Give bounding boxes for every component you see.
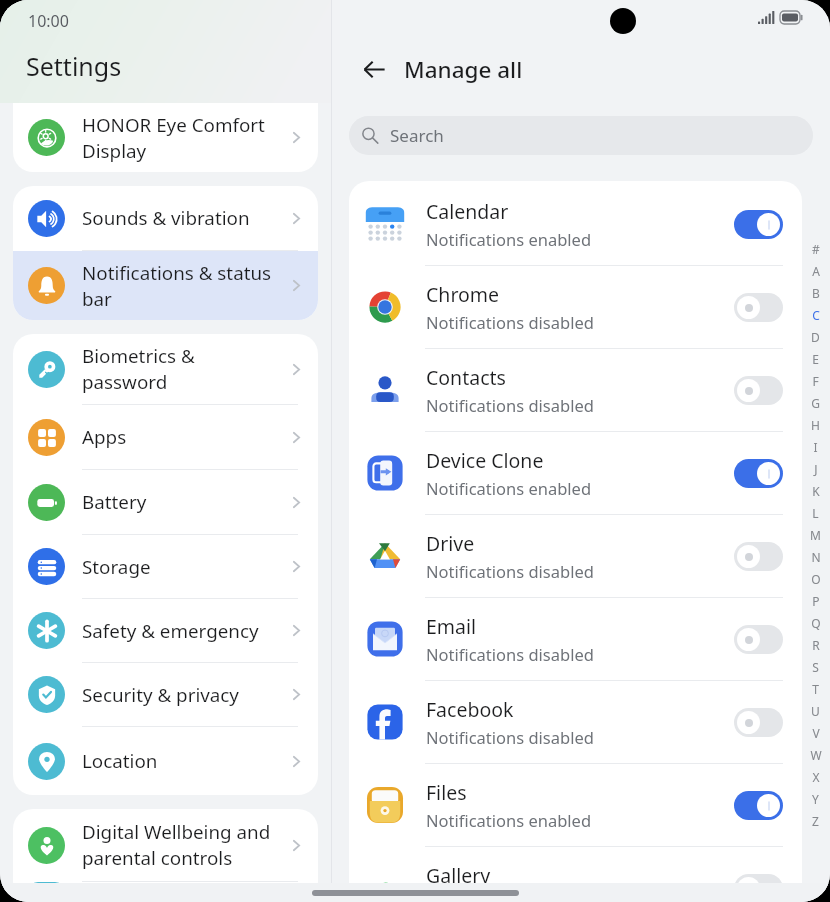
button[interactable]: G [807, 392, 824, 414]
staticText: Email [426, 613, 477, 640]
staticText: E [812, 351, 819, 367]
button[interactable]: Toggle notifications [734, 459, 783, 488]
staticText: Drive [426, 530, 475, 557]
staticText: Chrome [426, 281, 500, 308]
button[interactable]: Files [349, 764, 802, 846]
button[interactable]: L [807, 502, 824, 524]
button[interactable]: T [807, 678, 824, 700]
staticText: A [812, 263, 820, 279]
button[interactable]: B [807, 282, 824, 304]
staticText: Calendar [426, 198, 509, 225]
button[interactable]: J [807, 458, 824, 480]
button[interactable]: Q [807, 612, 824, 634]
button[interactable]: Drive [349, 515, 802, 597]
button[interactable]: S [807, 656, 824, 678]
button[interactable]: H [807, 414, 824, 436]
button[interactable]: X [807, 766, 824, 788]
staticText: R [812, 637, 820, 653]
staticText: Search [390, 124, 444, 147]
button[interactable]: Security & privacy [13, 663, 318, 726]
button[interactable]: Toggle notifications [734, 542, 783, 571]
staticText: # [812, 241, 820, 257]
staticText: Contacts [426, 364, 506, 391]
button[interactable]: Toggle notifications [734, 791, 783, 820]
staticText: Biometrics & password [82, 343, 288, 395]
staticText: Manage all [404, 54, 523, 85]
button[interactable]: Toggle notifications [734, 625, 783, 654]
staticText: Gallery [426, 862, 491, 889]
button[interactable]: Toggle notifications [734, 293, 783, 322]
button[interactable]: I [807, 436, 824, 458]
staticText: K [812, 483, 820, 499]
button[interactable]: Accessibility [13, 882, 318, 902]
staticText: HONOR Eye Comfort Display [82, 112, 288, 164]
button[interactable]: Battery [13, 470, 318, 534]
staticText: V [812, 725, 820, 741]
staticText: M [810, 527, 821, 543]
button[interactable]: Toggle notifications [734, 210, 783, 239]
staticText: Security & privacy [82, 682, 288, 708]
button[interactable]: Toggle notifications [734, 376, 783, 405]
button[interactable]: Biometrics & password [13, 334, 318, 404]
staticText: S [812, 659, 819, 675]
button[interactable]: V [807, 722, 824, 744]
button[interactable]: # [807, 238, 824, 260]
button[interactable]: Y [807, 788, 824, 810]
staticText: Facebook [426, 696, 514, 723]
button[interactable]: Device Clone [349, 432, 802, 514]
button[interactable]: P [807, 590, 824, 612]
button[interactable]: A [807, 260, 824, 282]
staticText: U [811, 703, 820, 719]
button[interactable]: M [807, 524, 824, 546]
staticText: P [812, 593, 820, 609]
button[interactable]: R [807, 634, 824, 656]
button[interactable]: HONOR Eye Comfort Display [13, 103, 318, 172]
button[interactable]: Storage [13, 535, 318, 598]
staticText: L [812, 505, 819, 521]
button[interactable]: N [807, 546, 824, 568]
staticText: Storage [82, 554, 288, 580]
staticText: Files [426, 779, 467, 806]
button[interactable]: Sounds & vibration [13, 186, 318, 250]
staticText: Notifications disabled [426, 311, 594, 333]
button[interactable]: F [807, 370, 824, 392]
staticText: O [811, 571, 821, 587]
staticText: Notifications disabled [426, 726, 594, 748]
staticText: C [812, 307, 820, 323]
staticText: Digital Wellbeing and parental controls [82, 819, 288, 871]
button[interactable]: Toggle notifications [734, 874, 783, 902]
button[interactable]: Toggle notifications [734, 708, 783, 737]
button[interactable]: Gallery [349, 847, 802, 902]
button[interactable]: Digital Wellbeing and parental controls [13, 809, 318, 881]
button[interactable]: Back [354, 49, 394, 89]
button[interactable]: Chrome [349, 266, 802, 348]
staticText: Y [812, 791, 819, 807]
staticText: Notifications & status bar [82, 260, 288, 312]
button[interactable]: K [807, 480, 824, 502]
staticText: J [814, 461, 818, 477]
button[interactable]: Apps [13, 405, 318, 469]
staticText: Q [811, 615, 821, 631]
button[interactable]: Safety & emergency [13, 599, 318, 662]
staticText: Z [812, 813, 819, 829]
button[interactable]: C [807, 304, 824, 326]
button[interactable]: W [807, 744, 824, 766]
button[interactable]: Z [807, 810, 824, 832]
button[interactable]: Location [13, 727, 318, 795]
staticText: B [812, 285, 820, 301]
staticText: I [813, 439, 818, 455]
staticText: Sounds & vibration [82, 205, 288, 231]
staticText: Notifications disabled [426, 560, 594, 582]
button[interactable]: Notifications & status bar [13, 251, 318, 320]
button[interactable]: Calendar [349, 183, 802, 265]
staticText: Notifications disabled [426, 892, 594, 902]
button[interactable]: O [807, 568, 824, 590]
button[interactable]: Facebook [349, 681, 802, 763]
staticText: Notifications disabled [426, 394, 594, 416]
button[interactable]: Contacts [349, 349, 802, 431]
button[interactable]: Search [349, 116, 813, 155]
button[interactable]: E [807, 348, 824, 370]
button[interactable]: D [807, 326, 824, 348]
button[interactable]: U [807, 700, 824, 722]
button[interactable]: Email [349, 598, 802, 680]
